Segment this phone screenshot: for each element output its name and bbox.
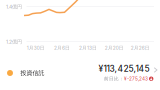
staticText: 1.2億円 xyxy=(6,39,22,45)
staticText: ¥-275,243 xyxy=(124,76,148,81)
staticText: 2月13日 xyxy=(79,45,97,51)
staticText: 前日比： xyxy=(104,76,124,82)
staticText: 投資信託 xyxy=(20,69,44,77)
staticText: 1.4億円 xyxy=(6,4,22,10)
staticText: 2月6日 xyxy=(54,45,70,51)
staticText: 2月26日 xyxy=(131,45,150,51)
staticText: 1月30日 xyxy=(27,45,45,51)
button[interactable]: 投資信託 xyxy=(0,0,160,90)
staticText: 2月20日 xyxy=(105,45,124,51)
staticText: ¥113,425,145 xyxy=(98,64,149,74)
